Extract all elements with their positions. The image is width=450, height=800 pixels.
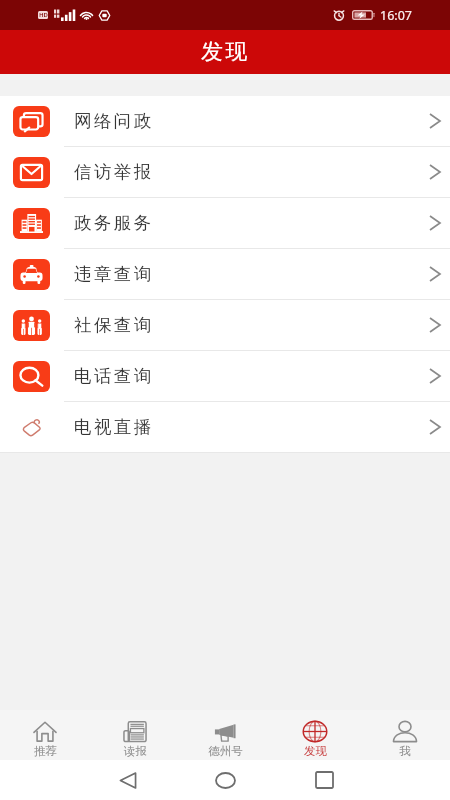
staticText: HD bbox=[39, 11, 48, 19]
button[interactable]: 德州号 bbox=[180, 710, 270, 760]
button[interactable]: 读报 bbox=[90, 710, 180, 760]
button[interactable]: 电视直播 bbox=[0, 402, 450, 452]
staticText: 电话查询 bbox=[74, 365, 154, 387]
button[interactable]: 发现 bbox=[270, 710, 360, 760]
button[interactable]: 信访举报 bbox=[0, 147, 450, 197]
staticText: 网络问政 bbox=[74, 110, 154, 132]
staticText: 发现 bbox=[304, 744, 327, 758]
button[interactable]: Home bbox=[205, 760, 245, 800]
staticText: 违章查询 bbox=[74, 263, 154, 285]
staticText: 推荐 bbox=[34, 744, 57, 758]
button[interactable]: 政务服务 bbox=[0, 198, 450, 248]
staticText: 德州号 bbox=[208, 744, 243, 758]
button[interactable]: Recents bbox=[304, 760, 344, 800]
button[interactable]: 违章查询 bbox=[0, 249, 450, 299]
staticText: 政务服务 bbox=[74, 212, 154, 234]
staticText: 我 bbox=[399, 744, 411, 758]
button[interactable]: 社保查询 bbox=[0, 300, 450, 350]
staticText: 信访举报 bbox=[74, 161, 154, 183]
button[interactable]: 网络问政 bbox=[0, 96, 450, 146]
button[interactable]: Back bbox=[108, 760, 148, 800]
button[interactable]: 电话查询 bbox=[0, 351, 450, 401]
staticText: 社保查询 bbox=[74, 314, 154, 336]
staticText: 16:07 bbox=[380, 7, 412, 24]
staticText: 电视直播 bbox=[74, 416, 154, 438]
staticText: 读报 bbox=[124, 744, 147, 758]
button[interactable]: 我 bbox=[360, 710, 450, 760]
button[interactable]: 推荐 bbox=[0, 710, 90, 760]
staticText: 发现 bbox=[201, 38, 250, 66]
